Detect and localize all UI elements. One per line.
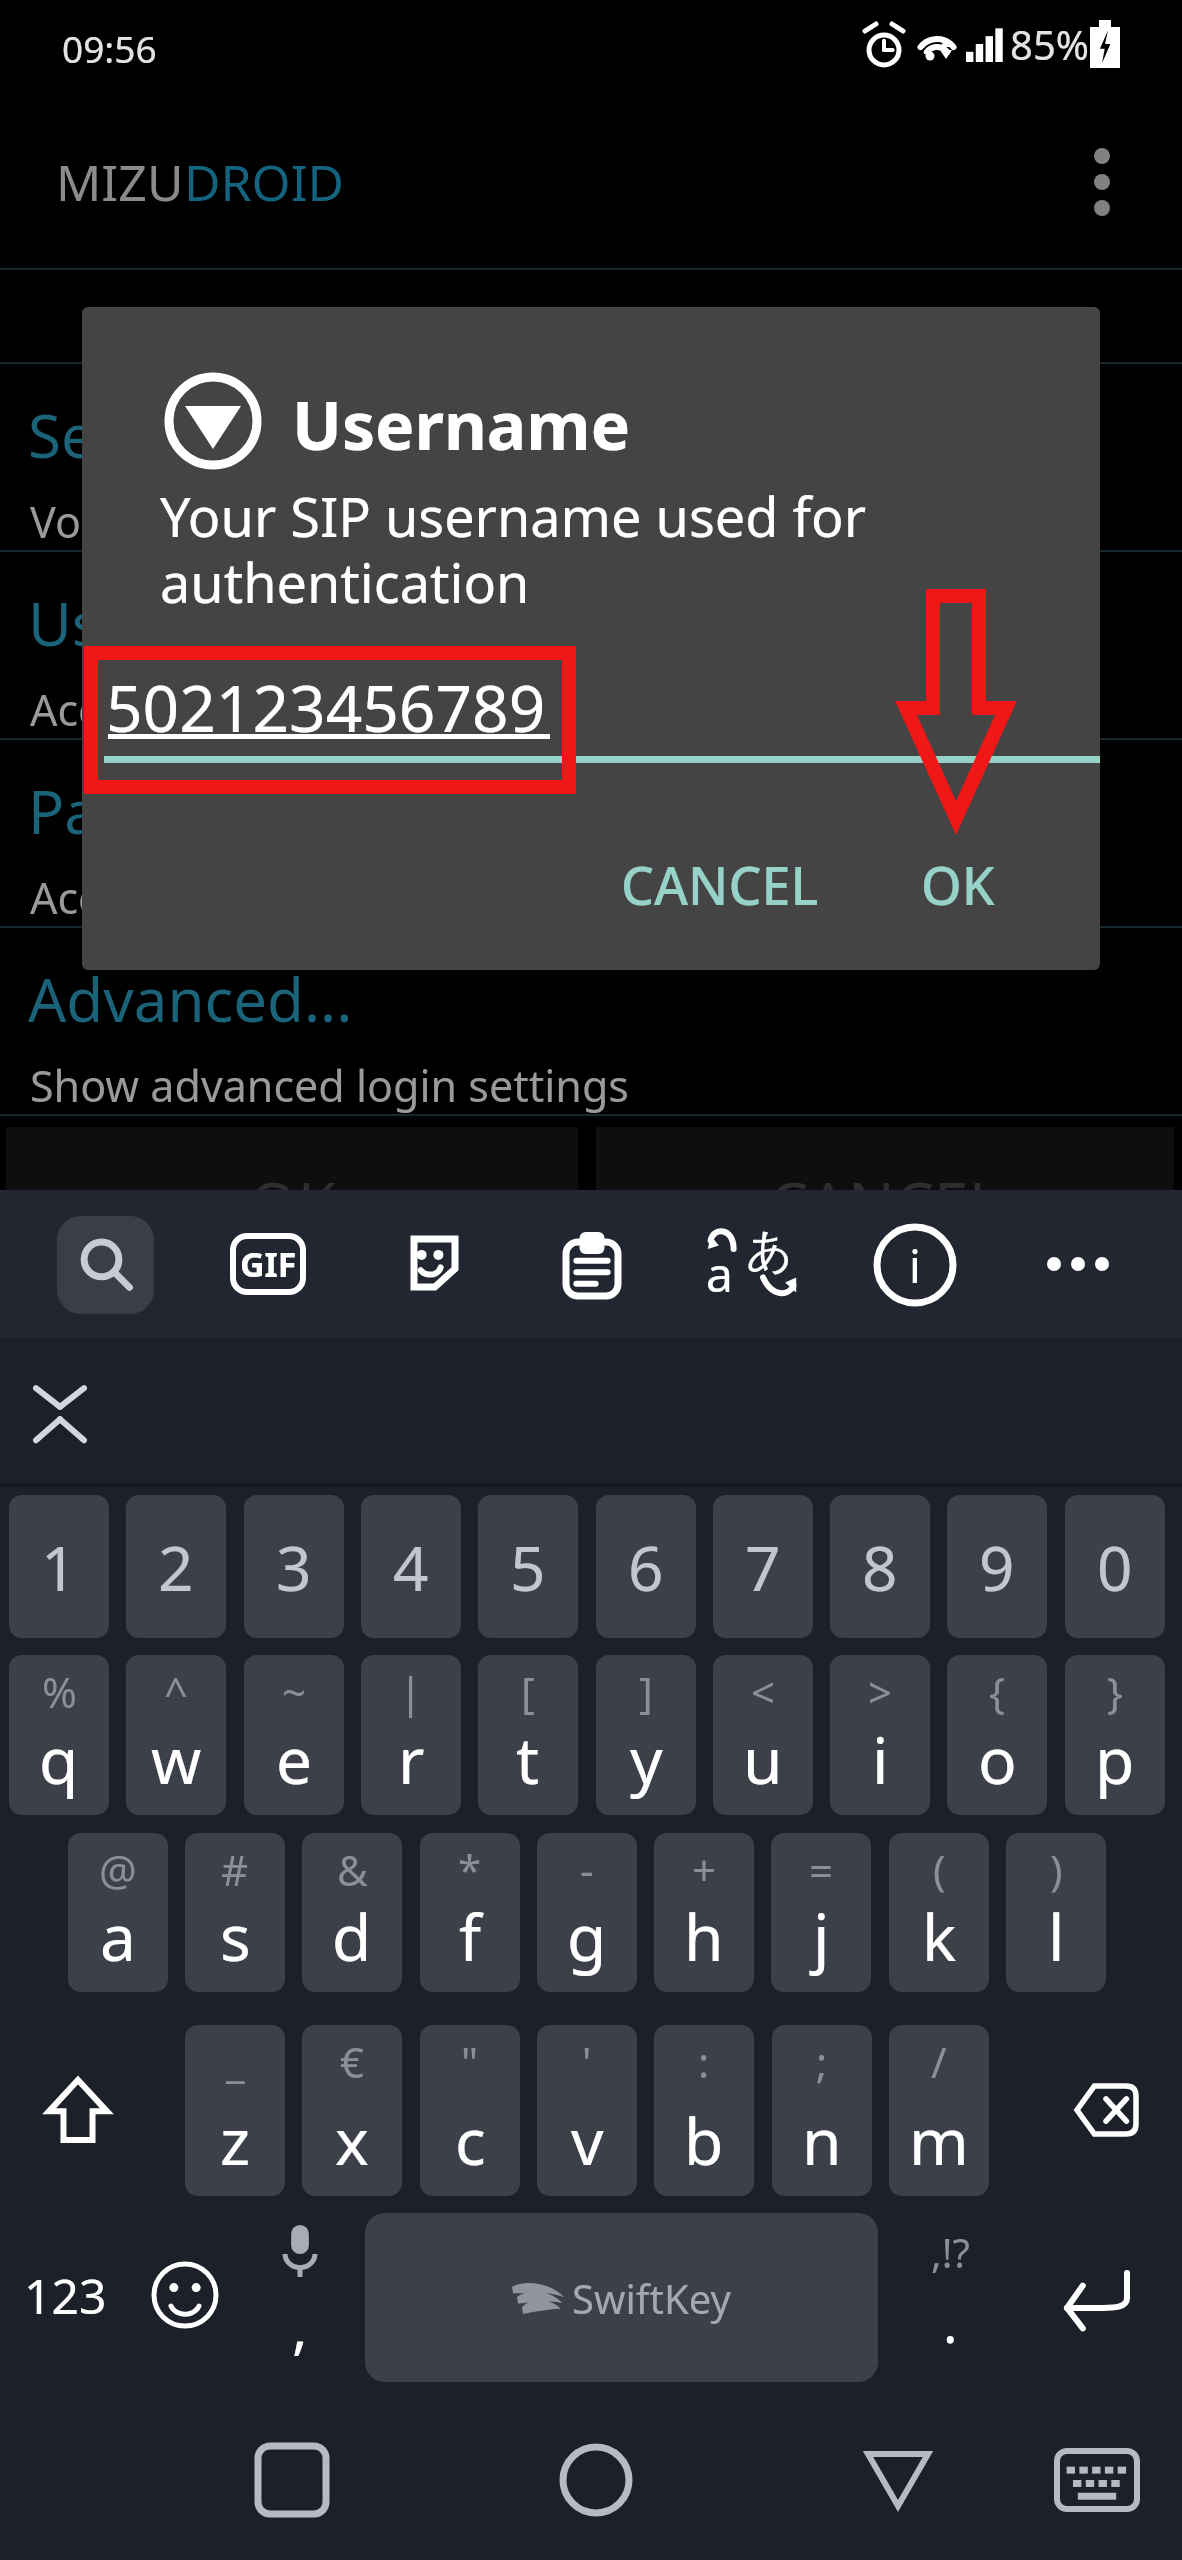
staticText: DROID bbox=[184, 148, 345, 216]
staticText: } bbox=[1107, 1663, 1123, 1720]
staticText: s bbox=[220, 1893, 251, 1980]
button[interactable]: Keyboard bbox=[1037, 2420, 1157, 2540]
button[interactable]: Search bbox=[57, 1216, 154, 1314]
staticText: 502123456789 bbox=[106, 664, 546, 751]
button[interactable]: Back bbox=[838, 2420, 958, 2540]
staticText: u bbox=[743, 1716, 783, 1803]
button[interactable]: 8 bbox=[830, 1495, 930, 1638]
button[interactable]: More options bbox=[1052, 132, 1152, 232]
staticText: h bbox=[684, 1893, 724, 1980]
button[interactable]: Home bbox=[536, 2420, 656, 2540]
button[interactable]: % bbox=[9, 1655, 109, 1815]
staticText: ' bbox=[582, 2033, 592, 2090]
button[interactable]: 1 bbox=[9, 1495, 109, 1638]
button[interactable]: ) bbox=[1006, 1833, 1106, 1992]
button[interactable]: Server bbox=[0, 362, 1182, 550]
button[interactable]: 7 bbox=[713, 1495, 813, 1638]
staticText: OK bbox=[249, 1161, 336, 1245]
button[interactable]: OK bbox=[6, 1127, 578, 1247]
button[interactable]: > bbox=[830, 1655, 930, 1815]
button[interactable]: Backspace bbox=[1041, 2055, 1171, 2165]
button[interactable]: 6 bbox=[596, 1495, 696, 1638]
button[interactable]: Shift bbox=[14, 2045, 142, 2175]
button[interactable]: Password bbox=[0, 738, 1182, 926]
button[interactable]: | bbox=[361, 1655, 461, 1815]
staticText: d bbox=[332, 1893, 372, 1980]
button[interactable]: Period and punctuation bbox=[895, 2225, 1005, 2365]
staticText: g bbox=[567, 1893, 607, 1980]
button[interactable]: + bbox=[654, 1833, 754, 1992]
button[interactable]: ] bbox=[596, 1655, 696, 1815]
button[interactable]: CANCEL bbox=[601, 831, 839, 938]
button[interactable]: Emoji bbox=[130, 2240, 240, 2350]
staticText: 9 bbox=[979, 1525, 1015, 1609]
staticText: a bbox=[100, 1893, 136, 1980]
staticText: Username bbox=[292, 379, 631, 469]
button[interactable]: Voice input and comma bbox=[250, 2225, 350, 2365]
button[interactable]: Hide keyboard bbox=[22, 1375, 98, 1451]
staticText: あ bbox=[746, 1222, 794, 1280]
button[interactable]: ; bbox=[772, 2025, 872, 2196]
staticText: ; bbox=[816, 2033, 828, 2090]
staticText: % bbox=[42, 1663, 77, 1720]
staticText: p bbox=[1095, 1716, 1135, 1803]
button[interactable]: Numbers and symbols bbox=[10, 2240, 120, 2350]
button[interactable]: - bbox=[537, 1833, 637, 1992]
button[interactable]: 0 bbox=[1065, 1495, 1165, 1638]
button[interactable]: @ bbox=[68, 1833, 168, 1992]
staticText: [ bbox=[521, 1663, 535, 1720]
button[interactable]: / bbox=[889, 2025, 989, 2196]
staticText: + bbox=[692, 1841, 717, 1898]
staticText: 1 bbox=[41, 1525, 77, 1609]
button[interactable]: 9 bbox=[947, 1495, 1047, 1638]
button[interactable]: OK bbox=[901, 831, 1015, 938]
staticText: # bbox=[221, 1841, 249, 1898]
staticText: Server bbox=[28, 394, 209, 476]
staticText: 5 bbox=[510, 1525, 546, 1609]
staticText: _ bbox=[226, 2033, 245, 2090]
button[interactable]: ^ bbox=[126, 1655, 226, 1815]
button[interactable]: * bbox=[420, 1833, 520, 1992]
button[interactable]: 2 bbox=[126, 1495, 226, 1638]
button[interactable]: [ bbox=[478, 1655, 578, 1815]
staticText: { bbox=[989, 1663, 1005, 1720]
button[interactable]: Recents bbox=[232, 2420, 352, 2540]
button[interactable]: < bbox=[713, 1655, 813, 1815]
button[interactable]: 3 bbox=[244, 1495, 344, 1638]
staticText: q bbox=[39, 1716, 79, 1803]
staticText: o bbox=[978, 1716, 1017, 1803]
button[interactable]: { bbox=[947, 1655, 1047, 1815]
button[interactable]: " bbox=[420, 2025, 520, 2196]
button[interactable]: Clipboard bbox=[546, 1218, 638, 1310]
button[interactable]: Space bbox=[365, 2213, 878, 2382]
staticText: € bbox=[340, 2033, 365, 2090]
staticText: 123 bbox=[24, 2263, 107, 2328]
button[interactable]: 5 bbox=[478, 1495, 578, 1638]
button[interactable]: = bbox=[771, 1833, 871, 1992]
staticText: i bbox=[872, 1716, 889, 1803]
button[interactable]: 4 bbox=[361, 1495, 461, 1638]
button[interactable]: ~ bbox=[244, 1655, 344, 1815]
button[interactable]: : bbox=[654, 2025, 754, 2196]
button[interactable]: Advanced... bbox=[0, 926, 1182, 1114]
staticText: i bbox=[909, 1234, 921, 1297]
staticText: Voip server/proxy address bbox=[30, 492, 556, 550]
button[interactable]: ' bbox=[537, 2025, 637, 2196]
staticText: e bbox=[276, 1716, 313, 1803]
button[interactable]: ( bbox=[889, 1833, 989, 1992]
button[interactable]: } bbox=[1065, 1655, 1165, 1815]
button[interactable]: More bbox=[1046, 1234, 1110, 1294]
button[interactable]: _ bbox=[185, 2025, 285, 2196]
button[interactable]: € bbox=[302, 2025, 402, 2196]
button[interactable]: GIF bbox=[230, 1232, 306, 1296]
button[interactable]: Stickers bbox=[385, 1218, 475, 1308]
staticText: y bbox=[630, 1716, 663, 1803]
button[interactable]: & bbox=[302, 1833, 402, 1992]
staticText: c bbox=[455, 2097, 486, 2184]
button[interactable]: Enter bbox=[1032, 2252, 1158, 2344]
button[interactable]: CANCEL bbox=[596, 1127, 1174, 1247]
button[interactable]: # bbox=[185, 1833, 285, 1992]
button[interactable]: Username bbox=[0, 550, 1182, 738]
button[interactable]: Info bbox=[871, 1221, 959, 1309]
button[interactable]: Translate bbox=[706, 1218, 798, 1310]
